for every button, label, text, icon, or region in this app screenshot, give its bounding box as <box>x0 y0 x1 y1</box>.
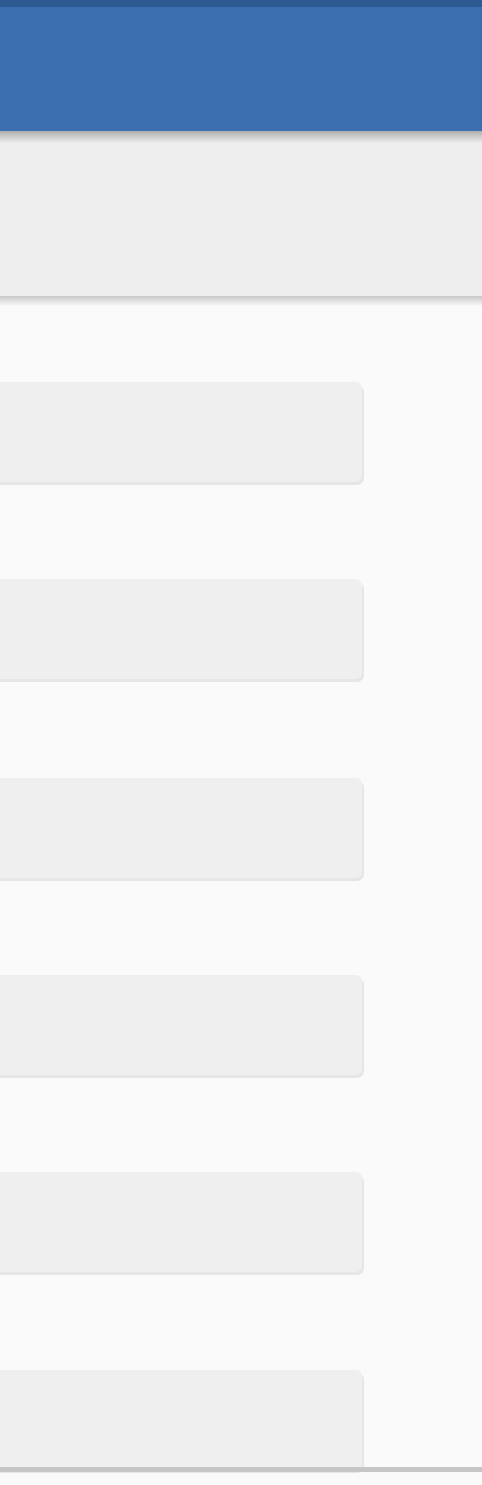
button[interactable]: App bar <box>0 0 482 131</box>
button[interactable]: Dropdown selector <box>0 1370 362 1470</box>
